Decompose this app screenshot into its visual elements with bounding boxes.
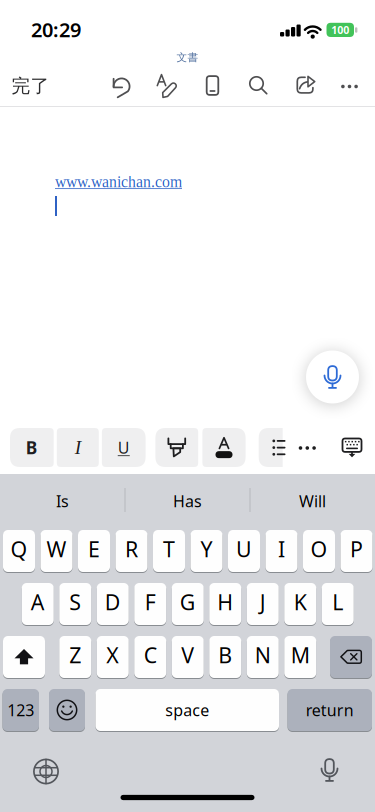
- staticText: U: [236, 535, 252, 563]
- button[interactable]: V: [172, 635, 204, 679]
- button[interactable]: Font Color: [202, 428, 246, 467]
- button[interactable]: Undo: [108, 73, 134, 99]
- staticText: K: [294, 588, 307, 616]
- button[interactable]: O: [303, 529, 335, 573]
- button[interactable]: L: [322, 582, 354, 626]
- button[interactable]: S: [59, 582, 91, 626]
- button[interactable]: T: [153, 529, 185, 573]
- staticText: O: [310, 535, 327, 563]
- button[interactable]: B: [209, 635, 241, 679]
- staticText: C: [144, 641, 157, 669]
- button[interactable]: Hide keyboard: [337, 432, 367, 462]
- button[interactable]: More formatting: [292, 433, 322, 463]
- staticText: 文書: [176, 51, 198, 64]
- staticText: Is: [56, 490, 69, 512]
- button[interactable]: Next keyboard: [33, 758, 59, 784]
- button[interactable]: Highlight: [155, 428, 198, 467]
- button[interactable]: Search: [245, 72, 271, 98]
- staticText: U: [118, 437, 130, 458]
- button[interactable]: space: [95, 688, 279, 732]
- staticText: E: [88, 535, 100, 563]
- button[interactable]: Is: [0, 478, 124, 524]
- staticText: space: [165, 699, 209, 721]
- button[interactable]: G: [172, 582, 204, 626]
- button[interactable]: Dictation: [318, 758, 341, 782]
- button[interactable]: W: [40, 529, 72, 573]
- button[interactable]: Emoji: [49, 688, 85, 732]
- button[interactable]: X: [97, 635, 129, 679]
- button[interactable]: Shift: [3, 635, 45, 679]
- button[interactable]: Y: [190, 529, 222, 573]
- button[interactable]: K: [284, 582, 316, 626]
- button[interactable]: H: [209, 582, 241, 626]
- button[interactable]: Delete: [330, 635, 372, 679]
- button[interactable]: Mobile view: [199, 72, 225, 98]
- staticText: www.wanichan.com: [55, 173, 182, 191]
- button[interactable]: M: [284, 635, 316, 679]
- button[interactable]: Dictate: [306, 350, 359, 403]
- staticText: H: [217, 588, 233, 616]
- staticText: P: [350, 535, 363, 563]
- button[interactable]: R: [115, 529, 147, 573]
- button[interactable]: N: [247, 635, 279, 679]
- staticText: S: [69, 588, 81, 616]
- staticText: return: [306, 699, 354, 721]
- button[interactable]: Z: [59, 635, 91, 679]
- staticText: Q: [10, 535, 27, 563]
- staticText: J: [260, 588, 266, 616]
- staticText: Y: [200, 535, 212, 563]
- staticText: 123: [7, 699, 34, 721]
- staticText: W: [46, 535, 66, 563]
- staticText: T: [163, 535, 175, 563]
- staticText: 20:29: [31, 16, 81, 43]
- button[interactable]: E: [78, 529, 110, 573]
- staticText: 100: [331, 23, 349, 37]
- staticText: Has: [173, 490, 202, 512]
- staticText: X: [106, 641, 119, 669]
- button[interactable]: A: [22, 582, 54, 626]
- staticText: G: [180, 588, 196, 616]
- button[interactable]: www.wanichan.com: [55, 173, 182, 191]
- button[interactable]: F: [134, 582, 166, 626]
- button[interactable]: 123: [2, 688, 39, 732]
- button[interactable]: C: [134, 635, 166, 679]
- button[interactable]: U: [228, 529, 260, 573]
- staticText: A: [31, 588, 45, 616]
- staticText: F: [145, 588, 156, 616]
- button[interactable]: 完了: [11, 69, 49, 103]
- staticText: Will: [299, 490, 326, 512]
- staticText: M: [291, 641, 310, 669]
- button[interactable]: More: [335, 74, 363, 98]
- button[interactable]: J: [247, 582, 279, 626]
- button[interactable]: D: [97, 582, 129, 626]
- button[interactable]: Format text: [155, 73, 177, 99]
- staticText: B: [218, 641, 232, 669]
- button[interactable]: Italic: [57, 428, 99, 467]
- staticText: Z: [69, 641, 81, 669]
- staticText: I: [75, 437, 81, 458]
- staticText: V: [181, 641, 194, 669]
- button[interactable]: P: [340, 529, 372, 573]
- staticText: L: [332, 588, 343, 616]
- button[interactable]: Bullets: [259, 428, 283, 467]
- staticText: R: [125, 535, 138, 563]
- button[interactable]: Will: [250, 478, 374, 524]
- staticText: 完了: [11, 74, 49, 97]
- button[interactable]: return: [287, 688, 372, 732]
- button[interactable]: Bold: [10, 428, 54, 467]
- staticText: N: [255, 641, 271, 669]
- staticText: B: [26, 436, 38, 459]
- button[interactable]: I: [265, 529, 297, 573]
- button[interactable]: Q: [3, 529, 35, 573]
- staticText: I: [278, 535, 285, 563]
- button[interactable]: Has: [125, 478, 249, 524]
- button[interactable]: Underline: [102, 428, 146, 467]
- button[interactable]: Share: [291, 72, 317, 98]
- staticText: D: [105, 588, 121, 616]
